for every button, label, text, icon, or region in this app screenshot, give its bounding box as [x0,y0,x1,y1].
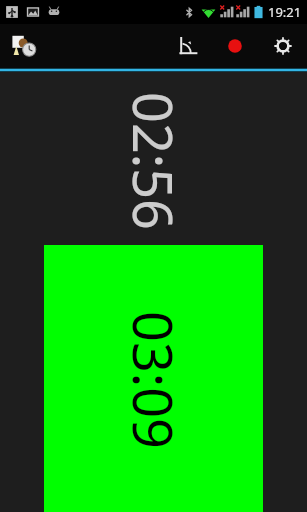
button[interactable]: Settings [259,24,307,68]
button[interactable]: App icon, home [8,29,42,63]
button[interactable]: Record [211,24,259,68]
staticText: 03:09 [116,310,190,449]
button[interactable]: 02:56 [0,72,307,250]
staticText: 19:21 [268,3,302,21]
button[interactable]: 03:09 [44,245,263,512]
button[interactable]: Measure angle [165,24,211,68]
staticText: 02:56 [116,91,190,230]
